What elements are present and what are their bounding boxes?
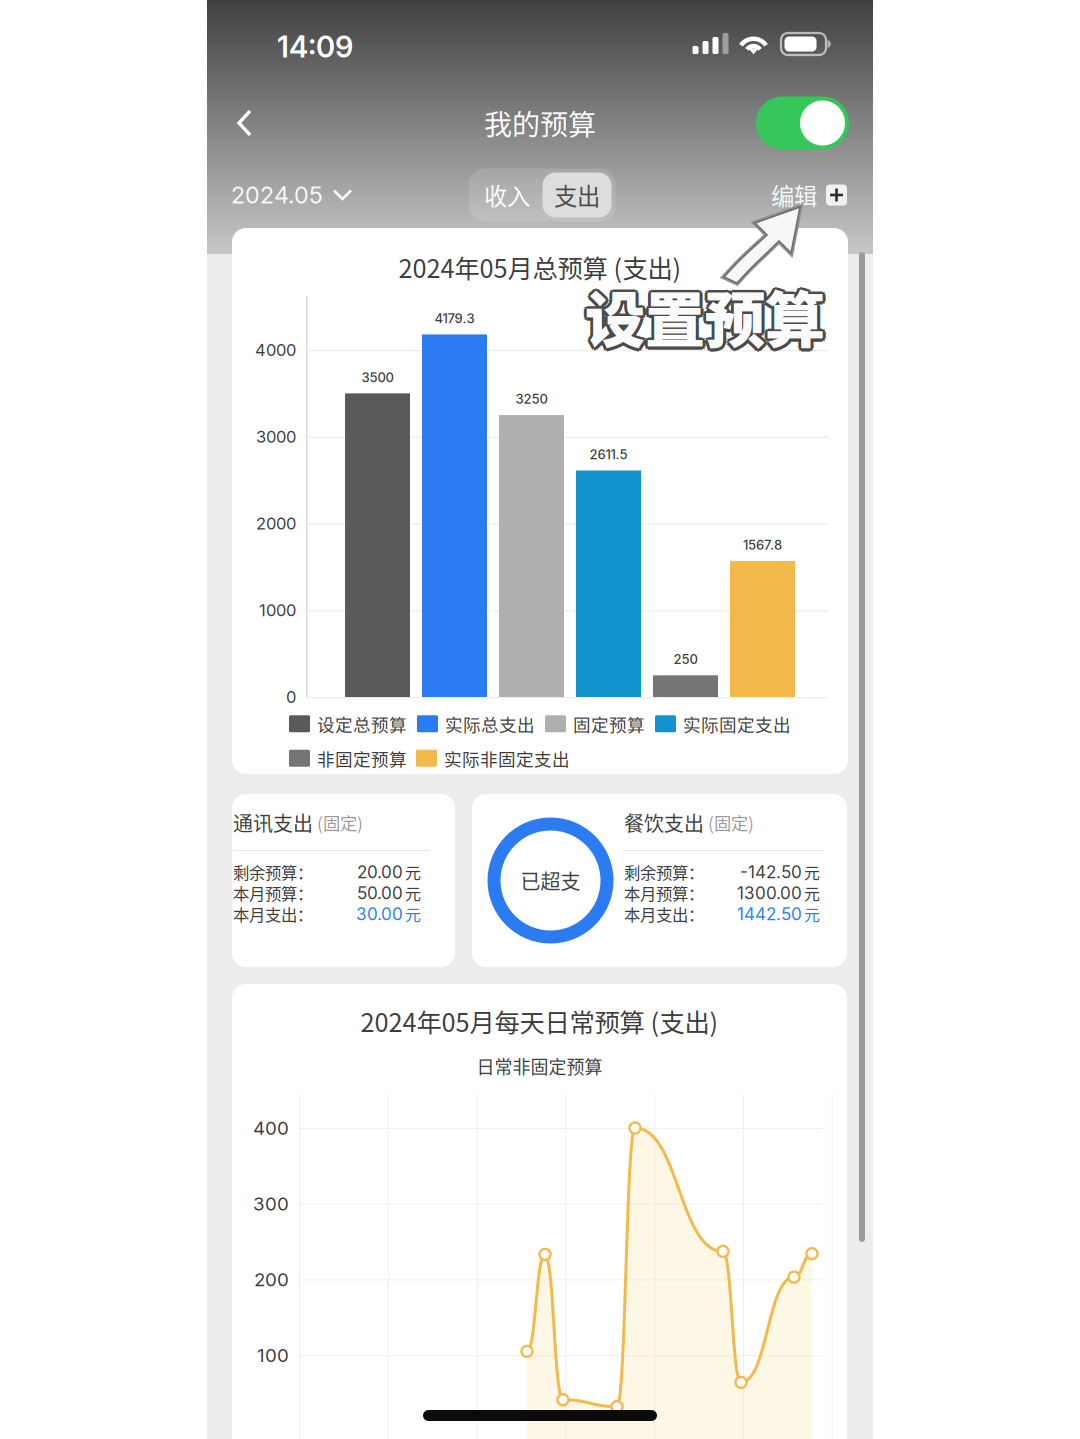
staticText: 实际固定支出 (683, 711, 791, 736)
staticText: 设定总预算 (317, 711, 407, 736)
staticText: 2611.5 (589, 446, 627, 462)
button[interactable]: 已超支 (472, 794, 847, 967)
staticText: 设置预算 (587, 275, 827, 362)
button[interactable]: 支出 (542, 172, 611, 217)
staticText: 已超支 (520, 866, 580, 895)
staticText: 本月支出： (624, 902, 704, 926)
staticText: 250 (673, 651, 697, 667)
staticText: 设置预算 (582, 273, 822, 360)
staticText: 3000 (256, 427, 296, 447)
staticText: 14:09 (277, 29, 353, 64)
staticText: 元 (804, 902, 820, 926)
staticText: 固定预算 (573, 711, 645, 736)
staticText: 4000 (255, 340, 296, 360)
staticText: 编辑 (771, 178, 817, 212)
staticText: 1000 (259, 600, 296, 620)
staticText: 2000 (256, 513, 296, 533)
staticText: 设置预算 (585, 272, 825, 359)
staticText: 设置预算 (585, 273, 825, 360)
staticText: 400 (253, 1117, 289, 1139)
staticText: 元 (804, 860, 820, 884)
staticText: 日常非固定预算 (476, 1053, 602, 1079)
staticText: 设置预算 (585, 276, 825, 363)
staticText: 实际总支出 (445, 711, 535, 736)
staticText: 实际非固定支出 (444, 745, 570, 771)
staticText: 100 (257, 1344, 289, 1366)
staticText: 2024年05月每天日常预算 (支出) (360, 1003, 718, 1039)
staticText: -142.50 (740, 862, 802, 882)
staticText: (固定) (708, 810, 754, 835)
staticText: 元 (804, 881, 820, 905)
staticText: 通讯支出 (233, 808, 313, 837)
staticText: 200 (254, 1268, 289, 1291)
staticText: 剩余预算： (233, 860, 313, 884)
staticText: 3500 (361, 369, 393, 385)
staticText: 2024.05 (231, 181, 323, 209)
staticText: 设置预算 (588, 273, 828, 360)
staticText: 4179.3 (434, 310, 474, 326)
staticText: 1300.00 (737, 883, 802, 903)
button[interactable]: 通讯支出 (232, 794, 455, 967)
staticText: 0 (286, 687, 296, 707)
button[interactable]: Budget enabled (756, 90, 849, 155)
staticText: 元 (405, 860, 421, 884)
staticText: 300 (253, 1192, 289, 1215)
staticText: 餐饮支出 (624, 808, 704, 837)
staticText: 1442.50 (737, 904, 802, 924)
staticText: 20.00 (357, 862, 403, 882)
staticText: 非固定预算 (317, 745, 407, 771)
staticText: 元 (405, 902, 421, 926)
staticText: 30.00 (356, 904, 403, 924)
staticText: 本月预算： (233, 881, 313, 905)
staticText: 设置预算 (587, 271, 827, 358)
staticText: 支出 (554, 178, 600, 212)
button[interactable]: 编辑 (771, 168, 847, 222)
staticText: 1567.8 (743, 537, 782, 553)
button[interactable]: 2024.05 (231, 171, 353, 219)
staticText: 我的预算 (484, 103, 596, 143)
staticText: 50.00 (357, 883, 403, 903)
staticText: (固定) (317, 810, 363, 835)
button[interactable]: Back (221, 93, 269, 153)
staticText: 剩余预算： (624, 860, 704, 884)
staticText: 收入 (484, 178, 530, 212)
staticText: 3250 (515, 391, 547, 407)
staticText: 2024年05月总预算 (支出) (398, 249, 681, 285)
staticText: 本月预算： (624, 881, 704, 905)
button[interactable]: 收入 (472, 172, 541, 217)
staticText: 元 (405, 881, 421, 905)
staticText: 设置预算 (583, 275, 823, 362)
staticText: 设置预算 (583, 271, 823, 358)
staticText: 本月支出： (233, 902, 313, 926)
staticText: 设置预算 (585, 270, 825, 357)
